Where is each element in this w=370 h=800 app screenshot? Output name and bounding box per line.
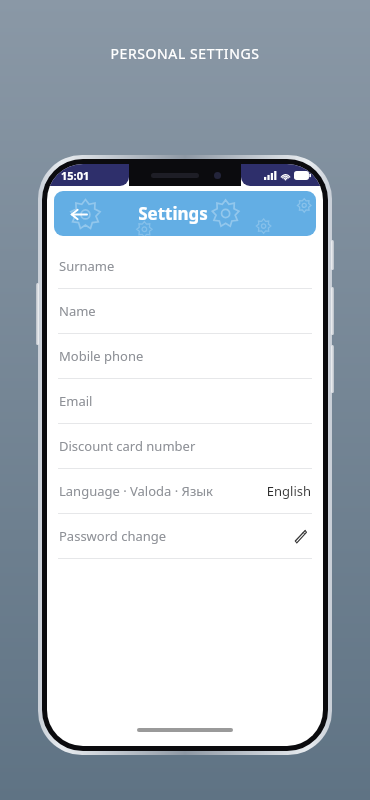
button[interactable]: Language · Valoda · Язык <box>47 469 323 513</box>
button[interactable]: Name <box>47 289 323 333</box>
button[interactable]: Mobile phone <box>47 334 323 378</box>
button[interactable]: Email <box>47 379 323 423</box>
staticText: 15:01 <box>61 168 90 183</box>
button[interactable]: Back <box>54 191 316 236</box>
staticText: Surname <box>59 257 311 275</box>
button[interactable]: Password change <box>47 514 323 558</box>
staticText: Name <box>59 302 311 320</box>
staticText: Email <box>59 392 311 410</box>
staticText: Language · Valoda · Язык <box>59 482 266 500</box>
staticText: Settings <box>138 202 208 225</box>
staticText: Discount card number <box>59 437 311 455</box>
staticText: Password change <box>59 527 287 545</box>
button[interactable]: Discount card number <box>47 424 323 468</box>
staticText: Mobile phone <box>59 347 311 365</box>
button[interactable]: Surname <box>47 244 323 288</box>
button[interactable]: Back <box>63 199 93 229</box>
staticText: English <box>266 482 311 500</box>
button[interactable]: Edit password <box>287 524 311 548</box>
staticText: PERSONAL SETTINGS <box>0 44 370 63</box>
